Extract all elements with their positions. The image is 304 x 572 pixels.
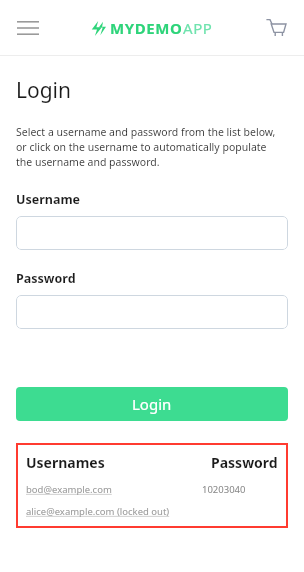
staticText: Login (132, 394, 172, 414)
staticText: MYDEMO (110, 18, 183, 38)
button[interactable] (16, 216, 288, 250)
staticText: APP (183, 18, 213, 38)
staticText: 10203040 (202, 483, 246, 496)
staticText: Password (16, 270, 76, 287)
button[interactable]: Cart (256, 8, 296, 48)
staticText: Usernames (26, 453, 211, 472)
button[interactable] (16, 295, 288, 329)
button[interactable]: alice@example.com (locked out) (26, 505, 170, 518)
staticText: Password (211, 453, 278, 472)
staticText: Username (16, 191, 81, 208)
staticText: Login (16, 76, 72, 105)
button[interactable]: Menu (8, 8, 48, 48)
button[interactable]: Login (16, 387, 288, 421)
button[interactable]: bod@example.com (26, 483, 112, 496)
staticText: Select a username and password from the … (16, 125, 276, 169)
